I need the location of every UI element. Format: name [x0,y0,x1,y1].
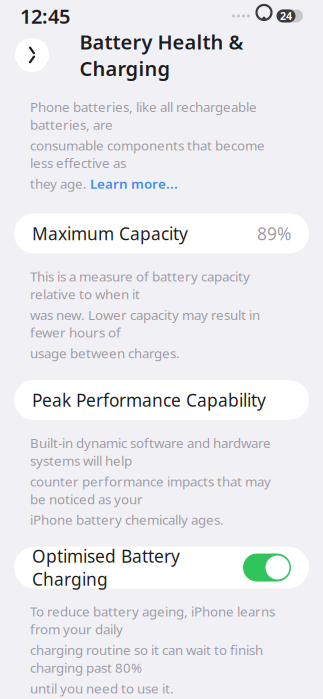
button[interactable]: Learn more... [90,175,178,192]
staticText: 89% [257,222,291,245]
staticText: Battery Health & Charging [79,28,243,81]
button[interactable]: Maximum Capacity [14,213,309,253]
staticText: consumable components that become less e… [30,136,265,172]
staticText: This is a measure of battery capacity re… [30,267,250,303]
staticText: Optimised Battery Charging [32,544,180,590]
staticText: counter performance impacts that may be … [30,472,271,508]
button[interactable]: Back [15,38,49,72]
staticText: Built-in dynamic software and hardware s… [30,434,271,469]
staticText: Maximum Capacity [32,222,188,245]
staticText: iPhone battery chemically ages. [30,511,224,528]
staticText: 24 [280,9,292,23]
staticText: charging routine so it can wait to finis… [30,641,263,676]
staticText: 12:45 [20,3,70,29]
button[interactable]: Peak Performance Capability [14,380,309,420]
staticText: Peak Performance Capability [32,388,266,411]
staticText: usage between charges. [30,344,180,362]
staticText: they age. [30,175,90,192]
staticText: To reduce battery ageing, iPhone learns … [30,602,275,638]
button[interactable]: Optimised Battery Charging [14,546,309,588]
staticText: Phone batteries, like all rechargeable b… [30,98,257,133]
staticText: was new. Lower capacity may result in fe… [30,306,260,341]
staticText: Learn more... [90,175,178,192]
staticText: until you need to use it. [30,679,174,697]
